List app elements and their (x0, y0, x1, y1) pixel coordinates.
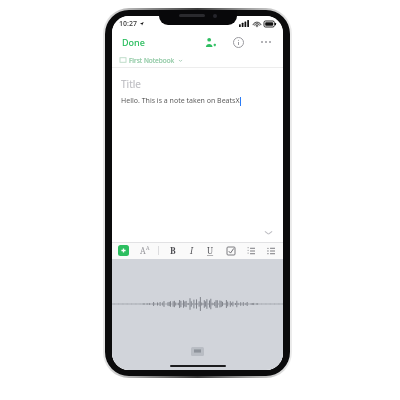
button[interactable]: Share note (201, 33, 219, 51)
button[interactable]: Bulleted list (264, 244, 277, 257)
button[interactable]: B (166, 244, 179, 257)
staticText: B (170, 245, 176, 257)
staticText: A (146, 245, 150, 252)
staticText: Title (121, 77, 141, 91)
button[interactable]: Collapse keyboard (261, 225, 275, 239)
button[interactable]: Checklist (224, 244, 237, 257)
staticText: Hello. This is a note taken on BeatsX (121, 96, 240, 106)
button[interactable]: U (204, 244, 217, 257)
button[interactable]: Note info (229, 33, 247, 51)
staticText: U (207, 245, 214, 257)
button[interactable]: Done (120, 34, 147, 50)
button[interactable]: I (185, 244, 198, 257)
button[interactable]: Insert (118, 245, 129, 256)
staticText: 10:27 (119, 19, 137, 29)
button[interactable]: Numbered list (244, 244, 257, 257)
staticText: Done (122, 36, 145, 48)
button[interactable]: Hide keyboard (191, 347, 204, 356)
button[interactable]: Text style (138, 244, 151, 257)
button[interactable]: First Notebook (120, 53, 275, 67)
staticText: A (140, 245, 146, 256)
button[interactable]: More options (257, 33, 275, 51)
staticText: First Notebook (129, 56, 175, 65)
staticText: I (190, 245, 194, 257)
